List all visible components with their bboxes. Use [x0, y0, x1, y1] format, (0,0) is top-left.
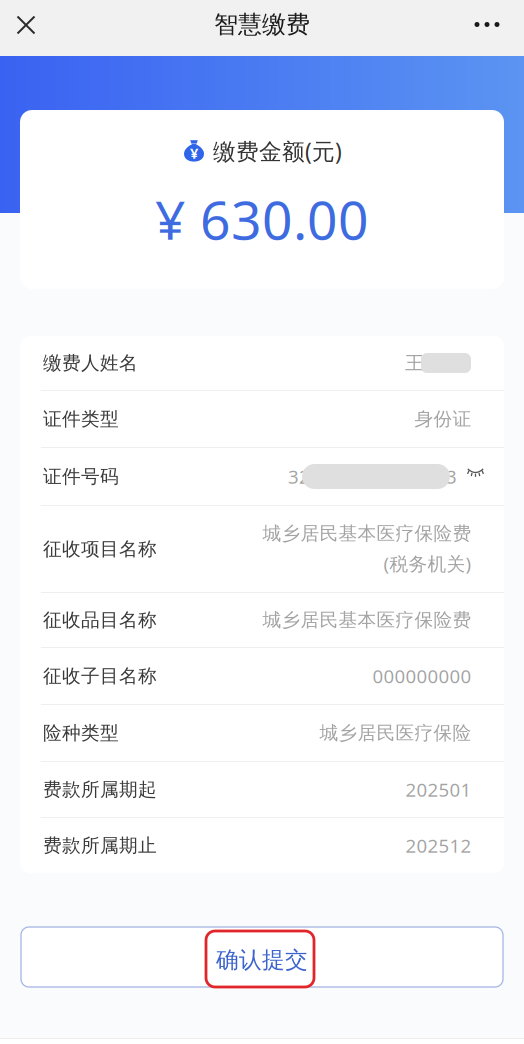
staticText: ¥ 630.00	[155, 184, 369, 254]
staticText: 缴费人姓名	[43, 351, 138, 374]
staticText: 险种类型	[43, 721, 119, 744]
staticText: 确认提交	[216, 946, 308, 974]
staticText: 缴费金额(元)	[213, 136, 342, 166]
button[interactable]: Close	[0, 3, 52, 53]
staticText: 202512	[405, 833, 471, 858]
staticText: 征收品目名称	[43, 608, 157, 631]
staticText: 王	[405, 351, 424, 374]
staticText: 城乡居民基本医疗保险费 (税务机关)	[262, 522, 471, 576]
button[interactable]: 确认提交	[0, 927, 524, 987]
staticText: 32	[288, 464, 310, 489]
staticText: 征收子目名称	[43, 664, 157, 687]
staticText: 3	[446, 464, 457, 489]
staticText: 征收项目名称	[43, 537, 157, 560]
staticText: 费款所属期起	[43, 778, 157, 801]
staticText: 证件类型	[43, 407, 119, 430]
staticText: 证件号码	[43, 465, 119, 488]
staticText: 202501	[405, 777, 471, 802]
staticText: 身份证	[414, 407, 471, 430]
staticText: ¥	[190, 143, 198, 163]
staticText: 城乡居民基本医疗保险费	[262, 608, 471, 631]
staticText: 费款所属期止	[43, 834, 157, 857]
button[interactable]: More options	[450, 2, 524, 53]
staticText: 智慧缴费	[214, 10, 310, 39]
staticText: 000000000	[372, 664, 471, 688]
staticText: 城乡居民医疗保险	[319, 721, 471, 744]
